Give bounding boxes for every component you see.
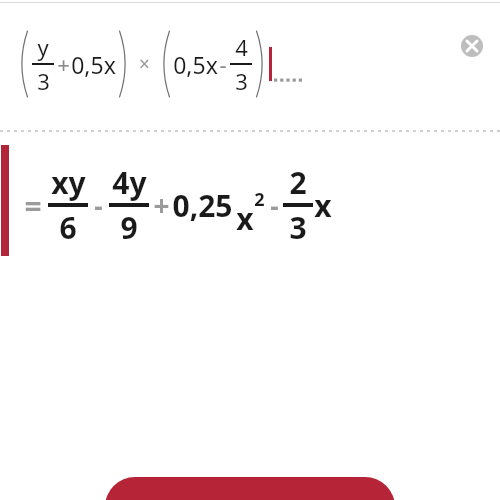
button[interactable] [105,477,395,500]
staticText: × [139,51,150,77]
staticText: 6 [59,207,77,248]
staticText: x [314,185,332,226]
staticText: xy [51,162,86,203]
staticText: 3 [289,207,307,248]
button[interactable]: Close [455,29,489,63]
staticText: 2 [254,187,265,212]
staticText: 4 [235,32,248,62]
staticText: 4y [112,162,147,203]
staticText: + [57,49,70,79]
staticText: x [236,198,254,239]
staticText: 3 [37,66,50,96]
staticText: 0,5x [71,49,116,80]
staticText: = [24,185,42,226]
staticText: - [270,188,279,223]
staticText: - [219,49,227,79]
staticText: 0,25 [172,185,233,226]
staticText: + [153,186,170,224]
staticText: 0,5x [173,49,218,80]
staticText: 9 [120,207,138,248]
staticText: y [37,32,49,62]
staticText: 3 [235,66,248,96]
staticText: 2 [289,162,307,203]
staticText: - [94,188,103,223]
